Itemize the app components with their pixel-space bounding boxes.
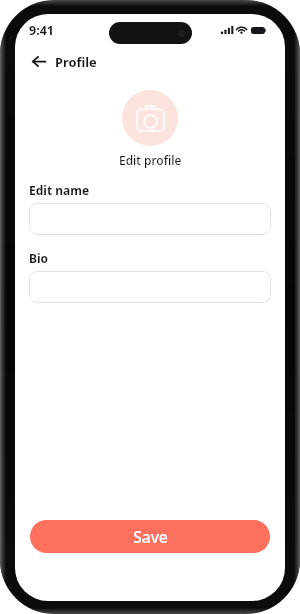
staticText: Edit name [29,182,90,198]
button[interactable]: Edit profile [15,90,285,168]
button[interactable] [29,203,271,235]
staticText: Bio [29,250,49,266]
button[interactable] [29,271,271,303]
button[interactable]: Save [30,520,270,553]
staticText: 9:41 [29,22,54,39]
staticText: Save [133,526,168,547]
staticText: Profile [55,53,97,70]
button[interactable]: Back [29,51,49,71]
staticText: Edit profile [119,152,182,168]
